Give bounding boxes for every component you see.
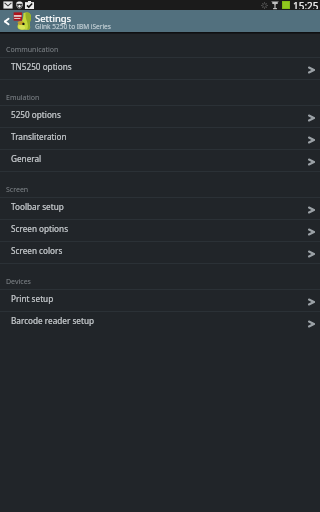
button[interactable]: General	[0, 150, 320, 172]
staticText: Screen options	[11, 223, 69, 234]
staticText: Devices	[6, 277, 31, 287]
button[interactable]: Transliteration	[0, 128, 320, 150]
button[interactable]: Toolbar setup	[0, 198, 320, 220]
staticText: Barcode reader setup	[11, 315, 94, 326]
staticText: TN5250 options	[11, 61, 72, 72]
staticText: Settings	[35, 12, 72, 25]
staticText: Screen	[6, 185, 29, 195]
button[interactable]: TN5250 options	[0, 58, 320, 80]
staticText: 5250 options	[11, 109, 61, 120]
button[interactable]: 5250 options	[0, 106, 320, 128]
staticText: Communication	[6, 45, 59, 55]
staticText: General	[11, 153, 42, 164]
staticText: 15:25	[293, 0, 319, 9]
staticText: Print setup	[11, 293, 54, 304]
staticText: Emulation	[6, 93, 40, 103]
button[interactable]: Screen colors	[0, 242, 320, 264]
staticText: Toolbar setup	[11, 201, 64, 212]
button[interactable]: Screen options	[0, 220, 320, 242]
button[interactable]: Back	[0, 10, 13, 32]
staticText: Transliteration	[11, 131, 67, 142]
button[interactable]: Print setup	[0, 290, 320, 312]
staticText: Glink 5250 to IBM iSeries	[35, 22, 111, 31]
button[interactable]: Barcode reader setup	[0, 312, 320, 334]
staticText: Screen colors	[11, 245, 63, 256]
